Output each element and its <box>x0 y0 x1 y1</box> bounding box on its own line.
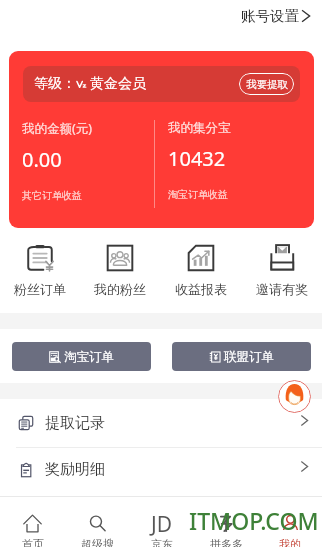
staticText: 拼多多 <box>210 537 243 547</box>
staticText: 粉丝订单 <box>14 281 66 297</box>
button[interactable]: 拼多多 <box>194 514 258 547</box>
button[interactable]: 客服 <box>278 380 311 413</box>
staticText: 10432 <box>168 145 226 172</box>
button[interactable]: 联盟订单 <box>172 342 311 371</box>
staticText: 奖励明细 <box>45 460 105 479</box>
button[interactable]: 超级搜 <box>65 514 130 547</box>
staticText: 提取记录 <box>45 414 105 433</box>
staticText: 京东 <box>151 537 173 547</box>
staticText: 我要提取 <box>246 78 288 91</box>
staticText: 我的金额(元) <box>22 120 93 137</box>
button[interactable]: 我的 <box>258 514 322 547</box>
staticText: 我的集分宝 <box>168 120 231 136</box>
button[interactable]: JD <box>130 514 194 547</box>
staticText: 我的 <box>279 537 301 547</box>
staticText: 超级搜 <box>81 537 114 547</box>
button[interactable]: 收益报表 <box>160 228 241 313</box>
button[interactable]: 账号设置 <box>229 3 322 29</box>
staticText: 邀请有奖 <box>256 281 308 297</box>
staticText: 黄金会员 <box>90 75 146 93</box>
button[interactable]: 我的粉丝 <box>80 228 160 313</box>
staticText: 其它订单收益 <box>22 189 82 202</box>
staticText: 我的粉丝 <box>94 281 146 297</box>
staticText: JD <box>151 510 173 539</box>
button[interactable]: 我要提取 <box>239 73 294 95</box>
button[interactable]: 淘宝订单 <box>12 342 151 371</box>
button[interactable]: 提取记录 <box>0 399 322 447</box>
staticText: 淘宝订单 <box>64 349 114 365</box>
staticText: 0.00 <box>22 146 62 173</box>
button[interactable]: 粉丝订单 <box>0 228 80 313</box>
staticText: ITMOP.COM <box>189 505 319 536</box>
staticText: 首页 <box>22 537 44 547</box>
button[interactable]: 邀请有奖 <box>241 228 322 313</box>
staticText: 淘宝订单收益 <box>168 188 228 201</box>
staticText: 收益报表 <box>175 281 227 297</box>
button[interactable]: 首页 <box>0 514 65 547</box>
staticText: 联盟订单 <box>224 349 274 365</box>
staticText: 账号设置 <box>241 7 299 25</box>
button[interactable]: 奖励明细 <box>0 448 322 491</box>
staticText: 等级： <box>34 75 76 93</box>
